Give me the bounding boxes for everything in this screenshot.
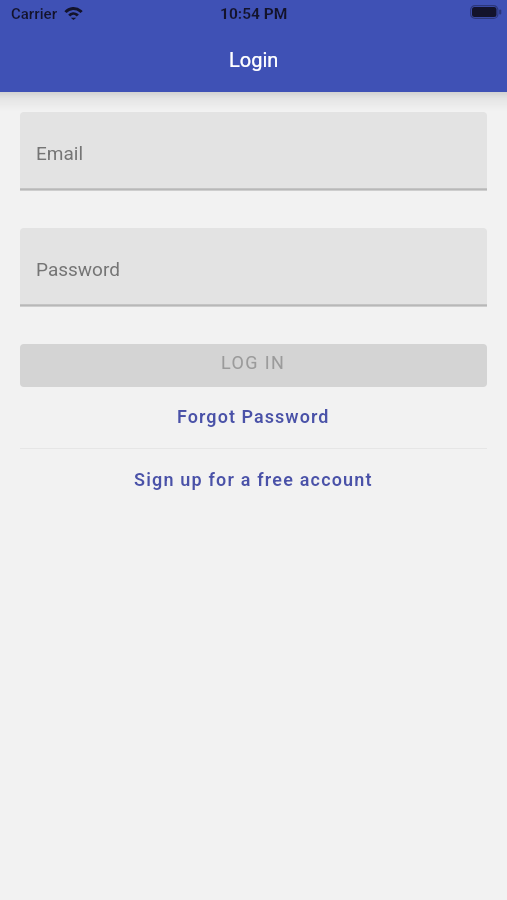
button[interactable]: Email: [20, 112, 487, 188]
staticText: LOG IN: [221, 352, 286, 373]
staticText: 10:54 PM: [220, 5, 288, 23]
staticText: Carrier: [11, 5, 58, 23]
button[interactable]: Sign up for a free account: [0, 456, 507, 502]
staticText: Password: [36, 258, 120, 280]
button[interactable]: Forgot Password: [0, 396, 507, 437]
other: Battery full: [470, 5, 502, 19]
staticText: Email: [36, 142, 84, 164]
button[interactable]: Password: [20, 228, 487, 304]
other: Wi-Fi signal: [64, 7, 83, 20]
button[interactable]: LOG IN: [20, 344, 487, 387]
staticText: Sign up for a free account: [134, 469, 373, 490]
staticText: Forgot Password: [177, 406, 330, 427]
staticText: Login: [229, 48, 279, 71]
